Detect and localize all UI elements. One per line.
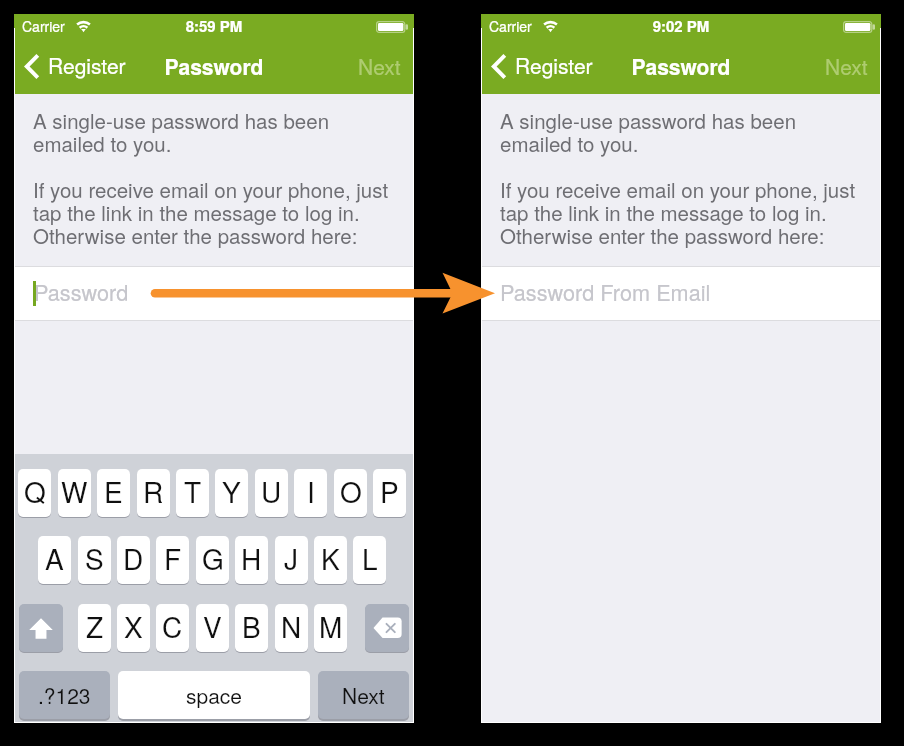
button[interactable]: S <box>78 536 111 584</box>
button[interactable]: space <box>118 671 310 719</box>
button[interactable]: J <box>275 536 308 584</box>
staticText: 9:02 PM <box>481 15 881 36</box>
staticText: B <box>242 606 261 646</box>
staticText: Next <box>825 51 868 81</box>
staticText: Password <box>481 51 881 81</box>
staticText: Next <box>342 680 385 710</box>
button[interactable]: O <box>334 469 367 517</box>
button[interactable]: B <box>235 604 268 652</box>
button[interactable]: H <box>235 536 268 584</box>
staticText: K <box>321 538 340 578</box>
button[interactable]: I <box>294 469 327 517</box>
button[interactable]: Next <box>347 54 414 94</box>
button[interactable]: Next <box>318 671 409 719</box>
staticText: Y <box>222 471 241 511</box>
button[interactable]: Backspace <box>365 604 409 652</box>
button[interactable]: G <box>196 536 229 584</box>
button[interactable]: Next <box>814 54 881 94</box>
button[interactable]: Z <box>78 604 111 652</box>
button[interactable]: .?123 <box>19 671 110 719</box>
staticText: D <box>123 538 144 578</box>
staticText: Q <box>24 471 46 511</box>
button[interactable]: Register <box>14 54 132 94</box>
staticText: P <box>380 471 399 511</box>
button[interactable]: E <box>97 469 130 517</box>
staticText: A single-use password has been emailed t… <box>500 105 856 250</box>
staticText: G <box>202 538 224 578</box>
staticText: Next <box>358 51 401 81</box>
staticText: S <box>85 538 104 578</box>
button[interactable]: Register <box>481 54 599 94</box>
staticText: M <box>319 606 343 646</box>
staticText: .?123 <box>38 680 91 710</box>
staticText: O <box>340 471 362 511</box>
staticText: Carrier <box>489 16 532 36</box>
button[interactable]: K <box>314 536 347 584</box>
button[interactable]: L <box>353 536 386 584</box>
staticText: L <box>362 538 378 578</box>
staticText: V <box>203 606 222 646</box>
button[interactable]: F <box>156 536 189 584</box>
button[interactable]: Shift <box>19 604 63 652</box>
button[interactable]: R <box>137 469 170 517</box>
button[interactable] <box>14 266 414 321</box>
button[interactable]: Q <box>18 469 51 517</box>
staticText: Password <box>14 51 414 81</box>
staticText: T <box>184 471 202 511</box>
staticText: W <box>61 471 88 511</box>
button[interactable]: C <box>156 604 189 652</box>
staticText: H <box>241 538 262 578</box>
staticText: Password <box>34 276 129 307</box>
button[interactable]: Y <box>215 469 248 517</box>
button[interactable]: U <box>255 469 288 517</box>
staticText: R <box>143 471 164 511</box>
button[interactable]: T <box>176 469 209 517</box>
button[interactable]: A <box>38 536 71 584</box>
button[interactable]: V <box>196 604 229 652</box>
staticText: Carrier <box>22 16 65 36</box>
button[interactable]: P <box>373 469 406 517</box>
staticText: X <box>124 606 143 646</box>
button[interactable]: N <box>275 604 308 652</box>
staticText: Z <box>86 606 104 646</box>
staticText: C <box>162 606 183 646</box>
staticText: 8:59 PM <box>14 15 414 36</box>
staticText: A <box>45 538 64 578</box>
staticText: F <box>164 538 182 578</box>
staticText: I <box>307 471 315 511</box>
staticText: A single-use password has been emailed t… <box>33 105 389 250</box>
staticText: J <box>284 538 299 578</box>
button[interactable] <box>481 266 881 321</box>
button[interactable]: X <box>117 604 150 652</box>
staticText: N <box>281 606 302 646</box>
button[interactable]: W <box>58 469 91 517</box>
staticText: E <box>104 471 123 511</box>
staticText: Register <box>515 50 593 80</box>
button[interactable]: M <box>314 604 347 652</box>
button[interactable]: D <box>117 536 150 584</box>
staticText: Register <box>48 50 126 80</box>
staticText: Password From Email <box>500 276 711 307</box>
staticText: space <box>186 680 243 710</box>
staticText: U <box>261 471 282 511</box>
